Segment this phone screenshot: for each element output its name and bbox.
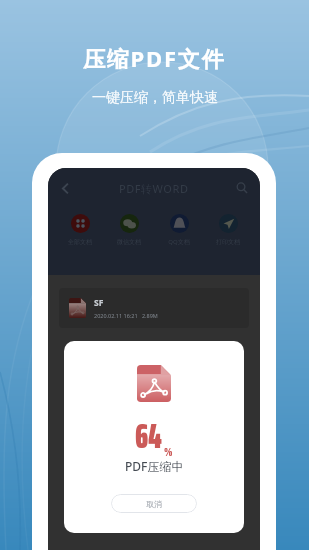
button[interactable]: 微信文档 <box>106 214 152 246</box>
staticText: % <box>164 442 173 461</box>
button[interactable]: 全部文档 <box>57 214 103 246</box>
button[interactable]: 取消 <box>111 494 197 513</box>
staticText: 微信文档 <box>106 238 152 246</box>
staticText: 打印文档 <box>205 238 251 246</box>
staticText: 2020.02.11 16:21 2.89M <box>94 312 158 319</box>
staticText: QQ文档 <box>156 238 202 246</box>
staticText: 压缩PDF文件 <box>83 43 226 73</box>
button[interactable]: 打印文档 <box>205 214 251 246</box>
staticText: PDF压缩中 <box>125 458 184 474</box>
staticText: 64 <box>135 409 162 463</box>
button[interactable]: QQ文档 <box>156 214 202 246</box>
button[interactable]: Back <box>55 178 75 198</box>
staticText: PDF转WORD <box>119 181 189 196</box>
button[interactable]: Search <box>232 178 252 198</box>
staticText: 全部文档 <box>57 238 103 246</box>
staticText: SF <box>94 297 104 309</box>
button[interactable]: SF <box>59 288 249 328</box>
staticText: 取消 <box>146 499 162 509</box>
staticText: 一键压缩，简单快速 <box>92 89 218 107</box>
